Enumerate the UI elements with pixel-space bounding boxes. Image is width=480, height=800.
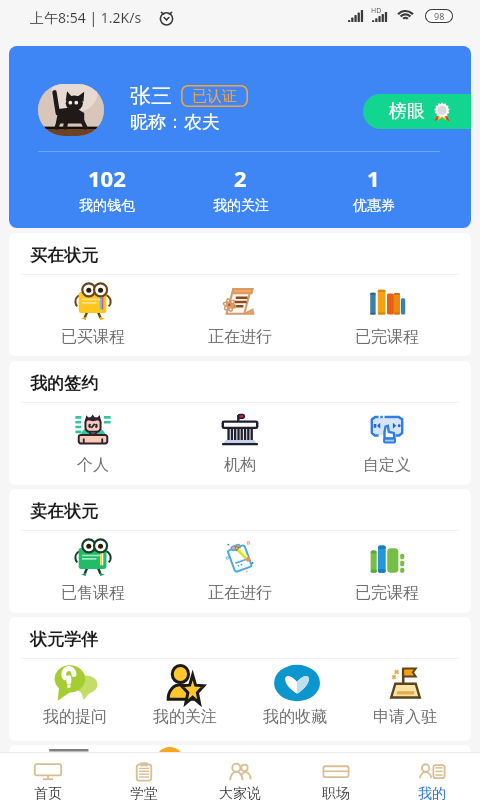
staticText: 2 [234,163,247,193]
staticText: 我的关注 [153,707,217,727]
staticText: 学堂 [130,785,158,800]
button[interactable]: 已完课程 [313,281,460,347]
button[interactable]: 已完课程 [313,537,460,603]
staticText: 我的 [418,785,446,800]
button[interactable]: 正在进行 [166,537,313,603]
staticText: 102 [88,163,126,193]
staticText: 上午8:54 | 1.2K/s [30,8,142,27]
button[interactable]: 机构 [166,409,313,475]
staticText: 已售课程 [61,583,125,603]
button[interactable]: 我的关注 [130,664,240,727]
staticText: 98 [434,10,445,22]
staticText: 申请入驻 [373,707,437,727]
staticText: HD [371,6,382,16]
staticText: 首页 [34,785,62,800]
staticText: 1 [367,163,380,193]
staticText: 昵称：农夫 [130,111,220,134]
button[interactable]: 正在进行 [166,281,313,347]
button[interactable]: 102 [40,163,174,215]
staticText: 买在状元 [30,245,98,266]
staticText: 已买课程 [61,327,125,347]
staticText: 优惠券 [353,197,395,215]
button[interactable]: 榜眼 [363,94,471,129]
staticText: 已完课程 [355,583,419,603]
staticText: 机构 [224,455,256,475]
button[interactable]: 我的 [384,753,480,800]
staticText: 榜眼 [389,100,425,123]
staticText: 大家说 [219,785,261,800]
staticText: 我的签约 [30,373,98,394]
staticText: 个人 [77,455,109,475]
button[interactable]: 已售课程 [20,537,166,603]
staticText: 张三 [130,83,172,109]
staticText: 正在进行 [208,327,272,347]
staticText: 职场 [322,785,350,800]
button[interactable]: 自定义 [313,409,460,475]
button[interactable]: 学堂 [96,753,192,800]
button[interactable]: 我的收藏 [240,664,350,727]
button[interactable]: 个人 [20,409,166,475]
staticText: 我的提问 [43,707,107,727]
button[interactable]: 1 [307,163,440,215]
staticText: 已完课程 [355,327,419,347]
staticText: 我的钱包 [79,197,135,215]
button[interactable]: 大家说 [192,753,288,800]
staticText: 卖在状元 [30,501,98,522]
button[interactable]: 申请入驻 [350,664,460,727]
staticText: 状元学伴 [30,629,98,650]
staticText: 我的关注 [213,197,269,215]
button[interactable]: 已买课程 [20,281,166,347]
staticText: 自定义 [363,455,411,475]
button[interactable]: 首页 [0,753,96,800]
staticText: 我的收藏 [263,707,327,727]
staticText: 已认证 [192,87,237,106]
button[interactable]: 职场 [288,753,384,800]
staticText: 正在进行 [208,583,272,603]
button[interactable]: 我的提问 [20,664,130,727]
button[interactable]: 2 [174,163,307,215]
